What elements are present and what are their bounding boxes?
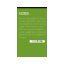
staticText: Every card you add becomes part of bbox=[19, 17, 47, 20]
staticText: Drafts stay private until you are bbox=[19, 28, 44, 30]
staticText: any time. bbox=[19, 36, 26, 38]
staticText: typing — no refresh, no merge. bbox=[19, 26, 43, 28]
button[interactable]: Continue bbox=[29, 40, 45, 43]
staticText: the change the moment you stop bbox=[19, 23, 46, 25]
staticText: the shared deck. Your teammates see bbox=[19, 20, 47, 22]
staticText: ready to publish them to the board. bbox=[19, 31, 46, 33]
staticText: Switch spaces from the sidebar at bbox=[19, 34, 46, 36]
staticText: Notes bbox=[19, 11, 29, 16]
staticText: Continue bbox=[32, 40, 42, 43]
